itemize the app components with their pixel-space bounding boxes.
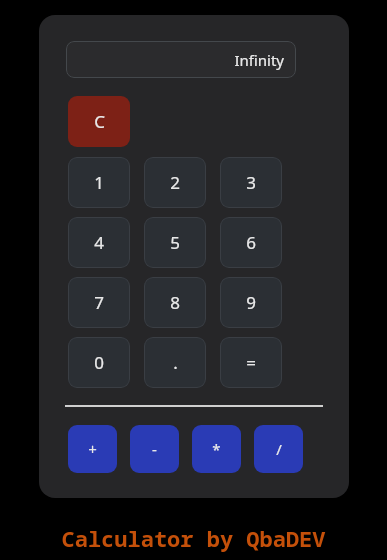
button[interactable]: / [254, 425, 303, 473]
button[interactable]: . [144, 337, 206, 388]
staticText: * [212, 439, 221, 459]
staticText: Calculator by QbaDEV [61, 523, 326, 553]
button[interactable]: 9 [220, 277, 282, 328]
staticText: . [173, 351, 178, 374]
button[interactable]: * [192, 425, 241, 473]
button[interactable]: + [68, 425, 117, 473]
staticText: 4 [94, 231, 104, 254]
button[interactable]: - [130, 425, 179, 473]
staticText: 7 [94, 291, 104, 314]
button[interactable]: 3 [220, 157, 282, 208]
button[interactable]: 0 [68, 337, 130, 388]
button[interactable]: C [68, 96, 130, 147]
button[interactable]: 8 [144, 277, 206, 328]
staticText: 8 [170, 291, 180, 314]
staticText: + [88, 439, 97, 459]
button[interactable]: 1 [68, 157, 130, 208]
staticText: = [246, 351, 256, 374]
button[interactable]: Infinity [66, 41, 296, 78]
staticText: 2 [170, 171, 180, 194]
button[interactable]: 6 [220, 217, 282, 268]
button[interactable]: 4 [68, 217, 130, 268]
staticText: 5 [170, 231, 180, 254]
button[interactable]: = [220, 337, 282, 388]
staticText: Infinity [234, 50, 284, 70]
staticText: 6 [246, 231, 256, 254]
staticText: 9 [246, 291, 256, 314]
button[interactable]: 5 [144, 217, 206, 268]
staticText: C [94, 110, 105, 133]
staticText: 3 [246, 171, 256, 194]
button[interactable]: 2 [144, 157, 206, 208]
staticText: 0 [94, 351, 104, 374]
staticText: 1 [94, 171, 104, 194]
staticText: - [152, 439, 157, 459]
staticText: / [276, 439, 282, 459]
button[interactable]: 7 [68, 277, 130, 328]
